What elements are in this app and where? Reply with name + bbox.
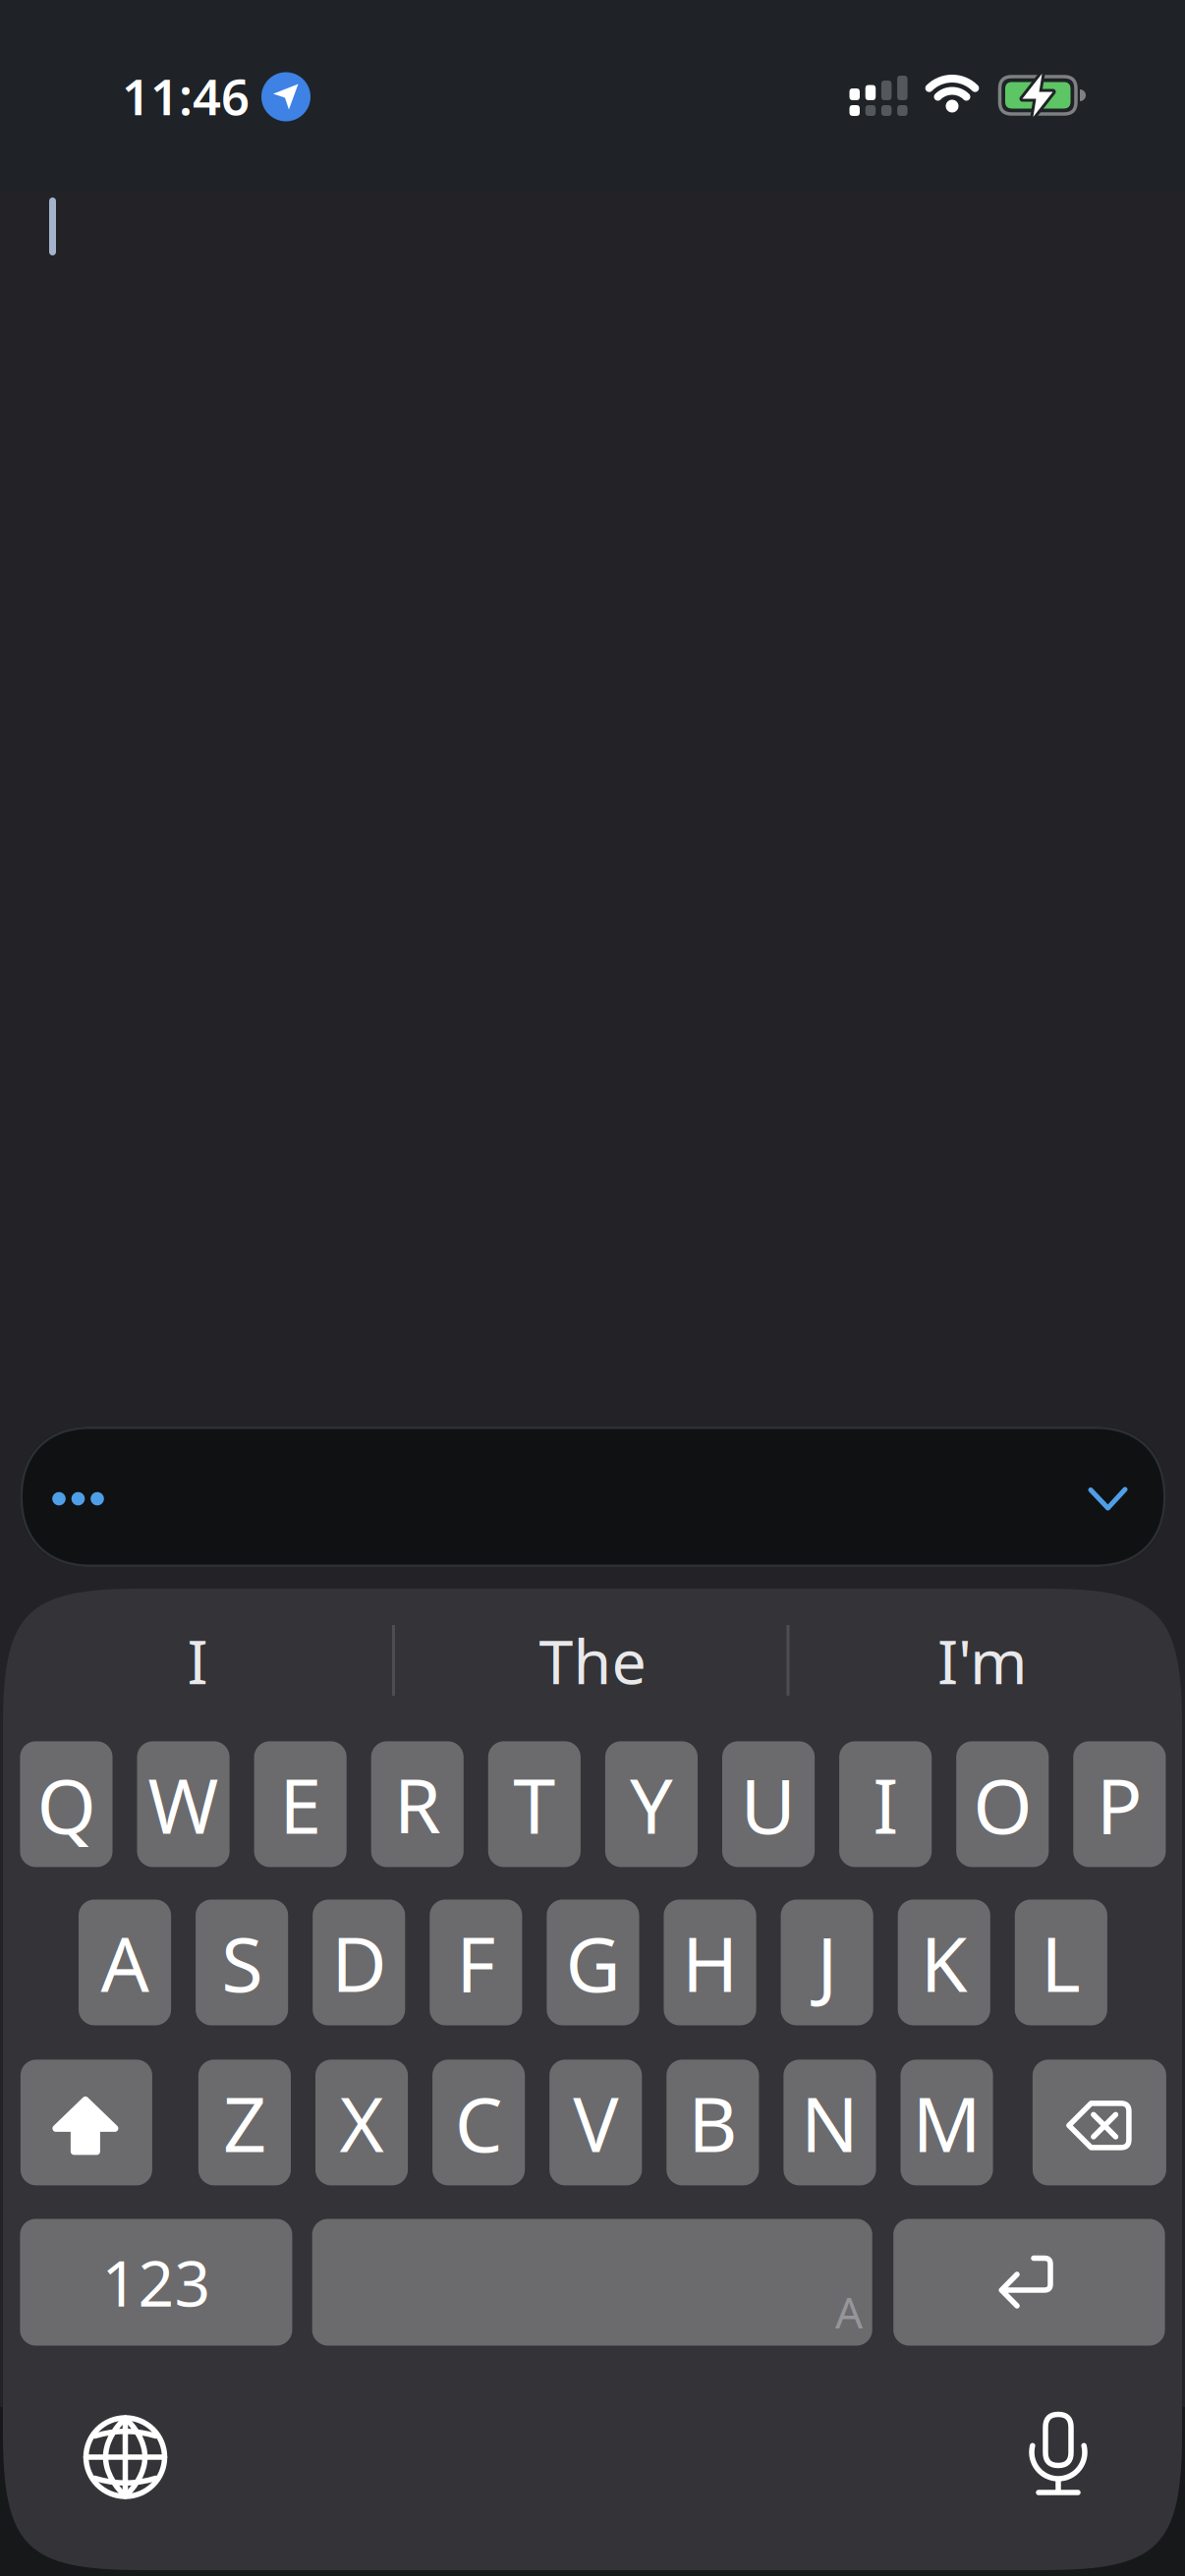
button[interactable]: H: [664, 1900, 756, 2025]
staticText: K: [920, 1912, 968, 2013]
button[interactable]: R: [371, 1741, 464, 1867]
button[interactable]: Shift: [21, 2060, 152, 2185]
button[interactable]: D: [313, 1900, 405, 2025]
staticText: W: [148, 1754, 219, 1855]
button[interactable]: B: [666, 2060, 759, 2185]
button[interactable]: Delete: [1033, 2060, 1166, 2185]
staticText: F: [456, 1912, 496, 2013]
staticText: V: [573, 2072, 618, 2173]
staticText: J: [817, 1912, 837, 2013]
staticText: P: [1096, 1754, 1143, 1855]
button[interactable]: Return: [893, 2219, 1165, 2346]
staticText: I: [873, 1754, 898, 1855]
button[interactable]: M: [901, 2060, 993, 2185]
button[interactable]: Typing: [20, 1427, 1166, 1567]
staticText: R: [394, 1754, 441, 1855]
staticText: 11:46: [122, 63, 250, 129]
staticText: I'm: [937, 1619, 1028, 1701]
button[interactable]: 123: [20, 2219, 292, 2346]
staticText: G: [565, 1912, 621, 2013]
button[interactable]: Y: [605, 1741, 698, 1867]
staticText: E: [279, 1754, 321, 1855]
button[interactable]: E: [254, 1741, 347, 1867]
staticText: Y: [630, 1754, 673, 1855]
button[interactable]: U: [722, 1741, 815, 1867]
button[interactable]: O: [956, 1741, 1049, 1867]
button[interactable]: Next keyboard: [71, 2403, 179, 2511]
staticText: C: [455, 2072, 503, 2173]
button[interactable]: Z: [198, 2060, 291, 2185]
staticText: O: [973, 1754, 1032, 1855]
button[interactable]: G: [547, 1900, 639, 2025]
staticText: H: [682, 1912, 738, 2013]
button[interactable]: J: [781, 1900, 873, 2025]
button[interactable]: X: [315, 2060, 408, 2185]
staticText: D: [331, 1912, 386, 2013]
button[interactable]: The: [406, 1605, 779, 1715]
staticText: L: [1041, 1912, 1081, 2013]
staticText: A: [101, 1912, 149, 2013]
button[interactable]: Q: [20, 1741, 113, 1867]
staticText: M: [912, 2072, 981, 2173]
staticText: I: [187, 1619, 208, 1701]
staticText: X: [340, 2072, 384, 2173]
button[interactable]: I: [839, 1741, 932, 1867]
button[interactable]: L: [1015, 1900, 1107, 2025]
staticText: A: [835, 2283, 863, 2340]
button[interactable]: W: [137, 1741, 230, 1867]
button[interactable]: K: [898, 1900, 990, 2025]
button[interactable]: S: [196, 1900, 288, 2025]
staticText: N: [801, 2072, 859, 2173]
staticText: Z: [223, 2072, 266, 2173]
button[interactable]: I'm: [796, 1605, 1169, 1715]
staticText: U: [740, 1754, 796, 1855]
button[interactable]: V: [549, 2060, 642, 2185]
button[interactable]: N: [784, 2060, 876, 2185]
staticText: 123: [102, 2240, 211, 2324]
button[interactable]: C: [432, 2060, 525, 2185]
button[interactable]: Collapse: [1081, 1480, 1135, 1519]
button[interactable]: T: [488, 1741, 581, 1867]
button[interactable]: P: [1073, 1741, 1166, 1867]
button[interactable]: I: [11, 1605, 384, 1715]
staticText: T: [513, 1754, 556, 1855]
staticText: S: [221, 1912, 263, 2013]
button[interactable]: A: [79, 1900, 171, 2025]
staticText: The: [539, 1619, 646, 1701]
button[interactable]: Dictate: [1004, 2399, 1112, 2507]
staticText: B: [688, 2072, 737, 2173]
button[interactable]: F: [430, 1900, 522, 2025]
button[interactable]: Space: [312, 2219, 872, 2346]
staticText: Q: [37, 1754, 96, 1855]
